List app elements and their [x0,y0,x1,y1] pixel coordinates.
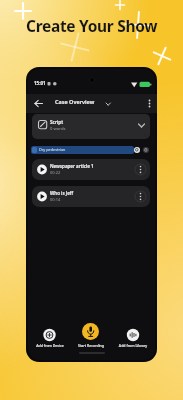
button[interactable] [143,147,149,153]
staticText: 15:01 [34,80,46,86]
button[interactable]: Newspaper article 1 [32,159,150,180]
staticText: 00:14 [50,197,61,202]
button[interactable] [32,96,46,110]
staticText: Newspaper article 1 [50,163,94,169]
staticText: Add from Library [113,343,153,350]
button[interactable] [30,325,70,351]
button[interactable] [134,147,140,153]
button[interactable]: Who is Jeff [32,186,150,207]
staticText: Start Recording [71,343,111,350]
staticText: Add from Device [30,343,70,350]
staticText: Dry pedestrian [39,147,66,152]
staticText: Case Overview [55,98,95,105]
button[interactable] [113,325,153,351]
button[interactable]: Dry pedestrian [31,146,134,154]
staticText: Create Your Show [26,15,158,36]
staticText: 00:22 [50,170,61,175]
staticText: 0 words [50,126,66,132]
button[interactable]: Case Overview [55,98,95,105]
button[interactable] [71,321,111,351]
button[interactable]: Script [32,114,150,139]
staticText: Who is Jeff [50,190,74,196]
button[interactable] [143,96,156,110]
button[interactable] [82,323,99,340]
staticText: Script [50,119,64,125]
